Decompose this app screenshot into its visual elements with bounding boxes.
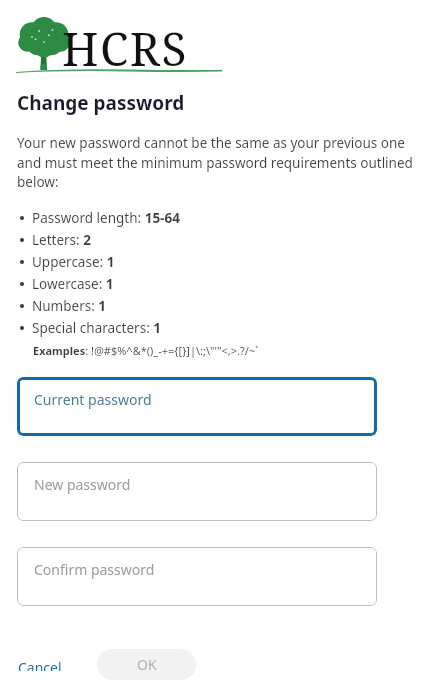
staticText: Numbers: 1 bbox=[32, 297, 107, 315]
staticText: Special characters: 1 bbox=[32, 319, 161, 337]
staticText: Uppercase: 1 bbox=[32, 253, 115, 271]
staticText: HCRS bbox=[62, 17, 188, 80]
staticText: Lowercase: 1 bbox=[32, 275, 114, 293]
staticText: New password bbox=[34, 475, 131, 494]
staticText: Current password bbox=[34, 390, 152, 409]
staticText: Letters: 2 bbox=[32, 231, 91, 249]
staticText: Change password bbox=[17, 90, 185, 116]
staticText: Your new password cannot be the same as … bbox=[17, 134, 424, 191]
button[interactable]: OK bbox=[97, 649, 196, 680]
button[interactable]: Confirm password bbox=[17, 547, 377, 606]
button[interactable]: New password bbox=[17, 462, 377, 521]
staticText: Password length: 15-64 bbox=[32, 209, 180, 227]
staticText: OK bbox=[137, 655, 157, 674]
staticText: Examples: !@#$%^&*()_-+={[}]|\:;\"'"<,>.… bbox=[33, 343, 259, 358]
staticText: Confirm password bbox=[34, 560, 155, 579]
staticText: Cancel bbox=[18, 658, 62, 671]
button[interactable]: Current password bbox=[17, 377, 377, 436]
button[interactable]: Cancel bbox=[6, 649, 74, 680]
